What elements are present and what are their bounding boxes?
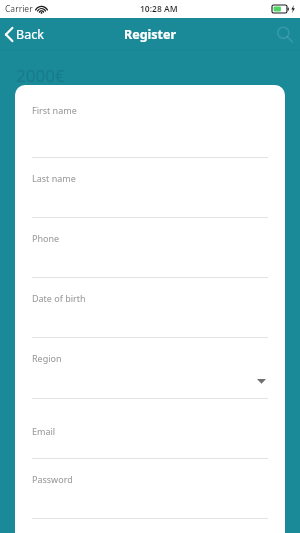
- staticText: Register: [124, 26, 177, 43]
- button[interactable]: First name: [32, 85, 268, 158]
- staticText: 10:28 AM: [140, 3, 178, 15]
- button[interactable]: Region: [32, 338, 268, 399]
- button[interactable]: Password: [32, 459, 268, 519]
- button[interactable]: Search: [268, 18, 300, 50]
- staticText: Last name: [32, 172, 76, 184]
- staticText: 2000€: [16, 64, 65, 87]
- staticText: Region: [32, 352, 62, 364]
- button[interactable]: Back: [0, 18, 52, 50]
- other: Open region dropdown: [254, 376, 268, 386]
- staticText: Date of birth: [32, 292, 86, 304]
- button[interactable]: Last name: [32, 158, 268, 218]
- staticText: Email: [32, 425, 56, 437]
- button[interactable]: Email: [32, 399, 268, 459]
- staticText: First name: [32, 104, 77, 116]
- button[interactable]: Phone: [32, 218, 268, 278]
- staticText: Password: [32, 473, 73, 485]
- staticText: Phone: [32, 232, 60, 244]
- staticText: Back: [16, 26, 44, 43]
- button[interactable]: Date of birth: [32, 278, 268, 338]
- staticText: Carrier: [5, 3, 33, 15]
